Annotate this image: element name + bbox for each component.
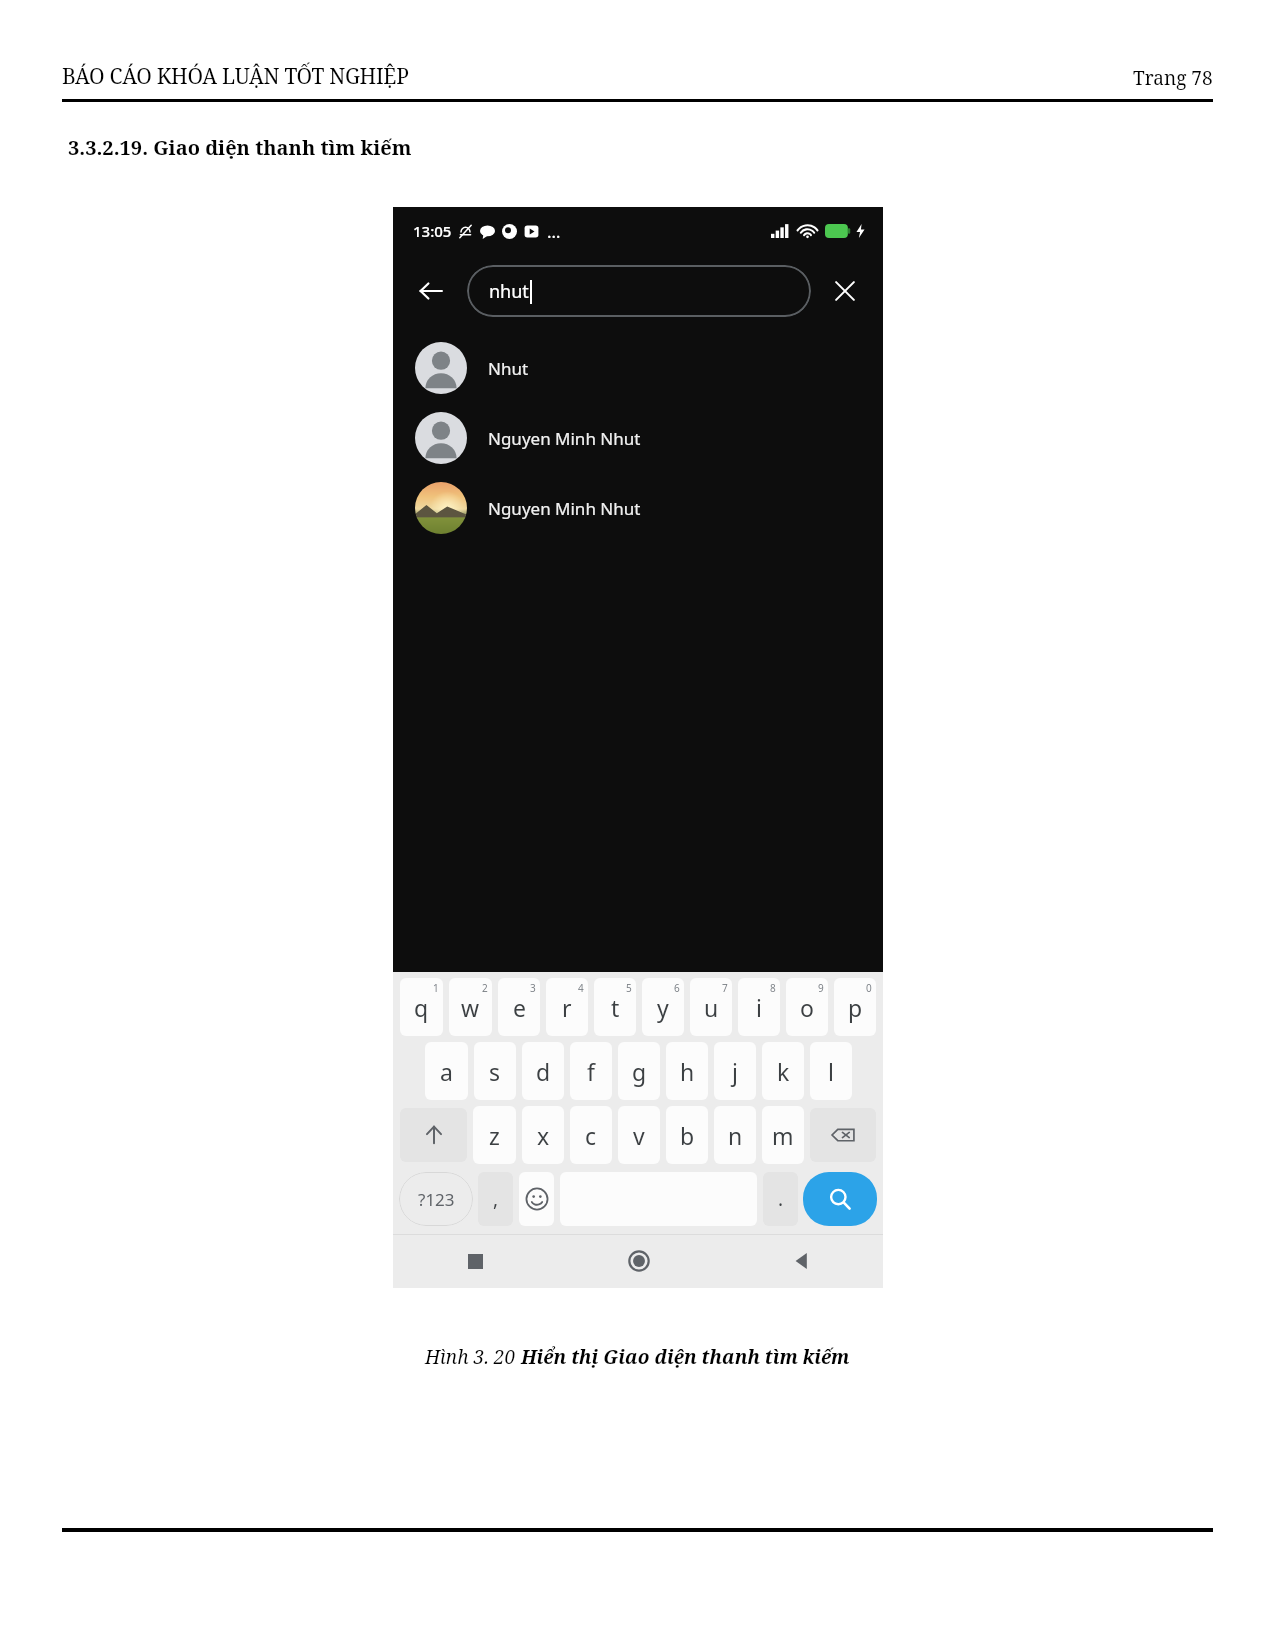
staticText: 0	[866, 981, 872, 995]
button[interactable]: p	[834, 978, 876, 1036]
button[interactable]: r	[546, 978, 588, 1036]
button[interactable]: a	[425, 1042, 468, 1100]
button[interactable]: z	[473, 1106, 516, 1164]
staticText: p	[848, 992, 863, 1023]
button[interactable]: h	[666, 1042, 708, 1100]
button[interactable]: e	[498, 978, 540, 1036]
staticText: i	[756, 992, 762, 1023]
button[interactable]: ?123	[399, 1172, 473, 1226]
button[interactable]: Nhut	[393, 333, 883, 403]
staticText: 4	[578, 981, 584, 995]
staticText: 3.3.2.19. Giao diện thanh tìm kiếm	[68, 134, 412, 161]
button[interactable]: u	[690, 978, 732, 1036]
staticText: v	[633, 1120, 645, 1151]
staticText: Nguyen Minh Nhut	[488, 427, 641, 450]
staticText: …	[547, 220, 561, 243]
staticText: Hiển thị Giao diện thanh tìm kiếm	[521, 1344, 850, 1370]
button[interactable]: k	[762, 1042, 804, 1100]
button[interactable]: Search	[803, 1172, 877, 1226]
staticText: .	[778, 1186, 784, 1212]
button[interactable]: Back	[720, 1234, 883, 1288]
button[interactable]: Backspace	[810, 1108, 876, 1162]
button[interactable]: Recent apps	[393, 1234, 557, 1288]
button[interactable]: o	[786, 978, 828, 1036]
staticText: o	[800, 992, 814, 1023]
staticText: ?123	[418, 1188, 455, 1211]
staticText: z	[489, 1120, 500, 1151]
button[interactable]: i	[738, 978, 780, 1036]
staticText: e	[513, 992, 526, 1023]
staticText: Hình 3. 20	[425, 1344, 521, 1370]
button[interactable]: l	[810, 1042, 852, 1100]
staticText: 13:05	[413, 221, 452, 241]
button[interactable]: g	[618, 1042, 660, 1100]
staticText: y	[657, 992, 669, 1023]
staticText: x	[537, 1120, 550, 1151]
staticText: a	[440, 1056, 453, 1087]
staticText: m	[772, 1120, 794, 1151]
staticText: 3	[530, 981, 536, 995]
staticText: Trang 78	[1133, 65, 1213, 91]
staticText: 1	[433, 981, 439, 995]
staticText: d	[536, 1056, 551, 1087]
button[interactable]: Nguyen Minh Nhut	[393, 473, 883, 543]
button[interactable]: t	[594, 978, 636, 1036]
staticText: s	[489, 1056, 501, 1087]
button[interactable]: f	[570, 1042, 612, 1100]
button[interactable]: d	[522, 1042, 564, 1100]
staticText: Nhut	[488, 357, 529, 380]
staticText: l	[828, 1056, 834, 1087]
button[interactable]: nhut	[467, 265, 811, 317]
button[interactable]: ,	[478, 1172, 513, 1226]
staticText: r	[562, 992, 572, 1023]
staticText: ,	[493, 1186, 499, 1212]
staticText: u	[704, 992, 719, 1023]
staticText: f	[587, 1056, 595, 1087]
staticText: nhut	[489, 279, 529, 304]
staticText: Nguyen Minh Nhut	[488, 497, 641, 520]
staticText: h	[680, 1056, 695, 1087]
button[interactable]: Emoji	[519, 1172, 554, 1226]
button[interactable]: x	[522, 1106, 564, 1164]
button[interactable]: w	[449, 978, 492, 1036]
button[interactable]: q	[400, 978, 443, 1036]
staticText: b	[680, 1120, 695, 1151]
staticText: 9	[818, 981, 824, 995]
staticText: 2	[482, 981, 488, 995]
button[interactable]: s	[474, 1042, 516, 1100]
staticText: q	[414, 992, 429, 1023]
staticText: BÁO CÁO KHÓA LUẬN TỐT NGHIỆP	[62, 62, 409, 91]
staticText: t	[611, 992, 620, 1023]
button[interactable]: v	[618, 1106, 660, 1164]
staticText: j	[732, 1056, 738, 1087]
staticText: k	[777, 1056, 790, 1087]
button[interactable]: y	[642, 978, 684, 1036]
button[interactable]: c	[570, 1106, 612, 1164]
staticText: 7	[722, 981, 728, 995]
staticText: 6	[674, 981, 680, 995]
staticText: 5	[626, 981, 632, 995]
button[interactable]: j	[714, 1042, 756, 1100]
staticText: c	[585, 1120, 597, 1151]
button[interactable]: .	[763, 1172, 798, 1226]
button[interactable]: Clear search	[821, 267, 869, 315]
staticText: g	[632, 1056, 647, 1087]
staticText: n	[728, 1120, 743, 1151]
button[interactable]: Shift	[400, 1108, 467, 1162]
button[interactable]: m	[762, 1106, 804, 1164]
button[interactable]: b	[666, 1106, 708, 1164]
staticText: w	[461, 992, 480, 1023]
button[interactable]: Back	[407, 267, 455, 315]
button[interactable]: Home	[557, 1234, 720, 1288]
button[interactable]: Nguyen Minh Nhut	[393, 403, 883, 473]
button[interactable]: n	[714, 1106, 756, 1164]
staticText: 8	[770, 981, 776, 995]
